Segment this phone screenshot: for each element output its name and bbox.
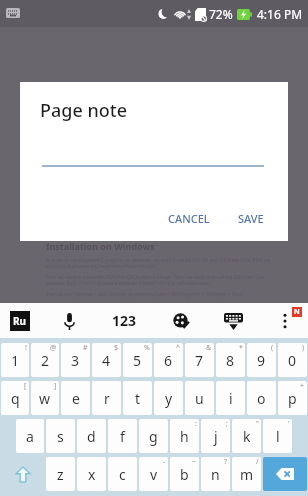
staticText: ] xyxy=(54,381,57,391)
staticText: q xyxy=(11,389,20,408)
button[interactable]: CANCEL xyxy=(162,206,216,231)
button[interactable]: r xyxy=(92,381,121,415)
button[interactable]: s xyxy=(46,419,75,453)
staticText: c xyxy=(119,465,126,484)
staticText: a xyxy=(26,427,34,446)
button[interactable]: Voice input xyxy=(56,308,82,334)
button[interactable]: 6 xyxy=(154,343,183,377)
button[interactable]: q xyxy=(1,381,29,415)
staticText: s xyxy=(57,427,64,446)
button[interactable]: l xyxy=(263,419,292,453)
button[interactable]: v xyxy=(139,457,168,491)
staticText: t xyxy=(135,389,141,408)
button[interactable]: More options xyxy=(272,308,298,334)
button[interactable]: p xyxy=(278,381,307,415)
staticText: j xyxy=(214,427,218,446)
button[interactable]: f xyxy=(108,419,137,453)
staticText: ) xyxy=(302,343,305,353)
staticText: $ xyxy=(114,343,119,353)
staticText: e xyxy=(72,389,80,408)
staticText: 5 xyxy=(133,351,142,370)
staticText: * xyxy=(239,343,243,353)
staticText: 0 xyxy=(288,351,297,370)
staticText: 4 xyxy=(102,351,111,370)
staticText: ! xyxy=(25,343,27,353)
staticText: ' xyxy=(288,419,290,429)
button[interactable]: Shift xyxy=(1,457,44,491)
button[interactable]: m xyxy=(232,457,261,491)
staticText: 6 xyxy=(164,351,173,370)
button[interactable]: a xyxy=(16,419,44,453)
staticText: # xyxy=(83,343,88,353)
button[interactable]: SAVE xyxy=(232,206,270,231)
staticText: b xyxy=(180,465,189,484)
staticText: % xyxy=(144,343,150,353)
staticText: r xyxy=(104,389,110,408)
button[interactable]: Backspace xyxy=(263,457,307,491)
button[interactable]: z xyxy=(46,457,75,491)
button[interactable]: 1 xyxy=(1,343,29,377)
staticText: : xyxy=(195,419,197,429)
staticText: [ xyxy=(24,381,27,391)
button[interactable]: Language Russian xyxy=(10,311,30,331)
staticText: k xyxy=(243,427,251,446)
staticText: Installation on Windows xyxy=(46,240,155,252)
staticText: ; xyxy=(226,419,228,429)
staticText: h xyxy=(180,427,189,446)
button[interactable]: b xyxy=(170,457,199,491)
button[interactable]: x xyxy=(77,457,106,491)
button[interactable]: 4 xyxy=(92,343,121,377)
button[interactable]: w xyxy=(31,381,59,415)
staticText: ~ xyxy=(192,457,197,467)
staticText: available at gnustep.org/experience/Wind… xyxy=(46,263,158,269)
staticText: Switch to the folder containing helloWor… xyxy=(46,302,143,308)
button[interactable]: 5 xyxy=(123,343,152,377)
button[interactable]: y xyxy=(154,381,183,415)
staticText: SAVE xyxy=(238,211,264,226)
button[interactable]: i xyxy=(216,381,245,415)
staticText: m xyxy=(240,465,254,484)
staticText: d xyxy=(87,427,96,446)
staticText: Ru xyxy=(13,314,27,328)
button[interactable]: e xyxy=(61,381,90,415)
staticText: / xyxy=(256,457,259,467)
staticText: 9 xyxy=(257,351,266,370)
staticText: " xyxy=(256,419,259,429)
staticText: 72% xyxy=(209,6,233,22)
button[interactable] xyxy=(42,162,264,170)
staticText: z xyxy=(57,465,64,484)
staticText: package. Both of which provide a windows… xyxy=(46,280,212,286)
button[interactable]: 8 xyxy=(216,343,245,377)
button[interactable]: h xyxy=(170,419,199,453)
staticText: 4:16 PM xyxy=(257,6,303,22)
button[interactable]: u xyxy=(185,381,214,415)
staticText: We can compile the program by using: xyxy=(46,313,129,319)
button[interactable]: c xyxy=(108,457,137,491)
staticText: ^ xyxy=(176,343,181,353)
button[interactable]: Hide keyboard xyxy=(220,308,246,334)
staticText: + xyxy=(300,381,305,391)
button[interactable]: j xyxy=(201,419,230,453)
button[interactable]: 9 xyxy=(247,343,276,377)
staticText: N xyxy=(294,307,300,317)
staticText: Then to use Objective-C and GNUstep by s… xyxy=(46,291,243,297)
button[interactable]: d xyxy=(77,419,106,453)
button[interactable]: k xyxy=(232,419,261,453)
button[interactable]: t xyxy=(123,381,152,415)
button[interactable]: 2 xyxy=(31,343,59,377)
button[interactable]: n xyxy=(201,457,230,491)
staticText: f xyxy=(120,427,125,446)
staticText: 7 xyxy=(195,351,204,370)
staticText: In order to run Objective-C program on w… xyxy=(46,257,271,263)
button[interactable]: Theme xyxy=(168,308,194,334)
button[interactable]: 3 xyxy=(61,343,90,377)
staticText: ? xyxy=(224,457,228,467)
staticText: 1 xyxy=(11,351,20,370)
button[interactable]: 123 xyxy=(108,307,141,334)
staticText: Page note xyxy=(40,98,127,123)
button[interactable]: g xyxy=(139,419,168,453)
button[interactable]: 7 xyxy=(185,343,214,377)
button[interactable]: o xyxy=(247,381,276,415)
button[interactable]: 0 xyxy=(278,343,307,377)
staticText: p xyxy=(288,389,297,408)
